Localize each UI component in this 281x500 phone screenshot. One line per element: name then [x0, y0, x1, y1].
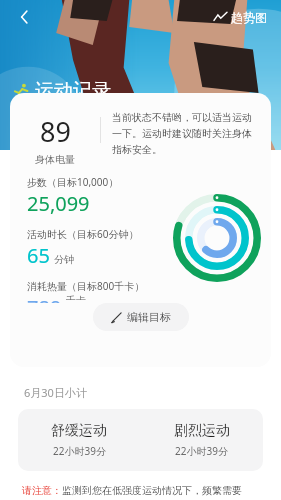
button[interactable]: 编辑目标: [93, 303, 189, 331]
staticText: 趋势图: [231, 10, 267, 25]
staticText: 25,099: [27, 190, 90, 217]
staticText: 千卡: [66, 294, 86, 300]
staticText: 分钟: [54, 253, 74, 266]
button[interactable]: 舒缓运动: [18, 409, 263, 471]
button[interactable]: Back: [10, 2, 40, 32]
staticText: 消耗热量（目标800千卡）: [27, 279, 145, 293]
staticText: 活动时长（目标60分钟）: [27, 227, 139, 241]
staticText: 22小时39分: [53, 444, 106, 458]
staticText: 请注意：: [22, 484, 62, 497]
staticText: 65: [27, 242, 50, 269]
staticText: 步数（目标10,000）: [27, 175, 119, 189]
staticText: 编辑目标: [127, 310, 171, 324]
staticText: 剧烈运动: [174, 422, 230, 440]
staticText: 身体电量: [35, 153, 75, 166]
button[interactable]: 趋势图: [210, 6, 271, 29]
staticText: 89: [40, 113, 71, 150]
staticText: 6月30日小计: [24, 385, 87, 400]
staticText: 03-27 22:55-06:30: [35, 106, 138, 122]
staticText: 当前状态不错哟，可以适当运动一下。运动时建议随时关注身体指标安全。: [112, 111, 259, 156]
staticText: 监测到您在低强度运动情况下，频繁需要: [62, 484, 242, 497]
staticText: 舒缓运动: [51, 422, 107, 440]
staticText: 22小时39分: [175, 444, 228, 458]
staticText: 789: [27, 294, 62, 303]
staticText: 运动记录: [35, 79, 111, 103]
